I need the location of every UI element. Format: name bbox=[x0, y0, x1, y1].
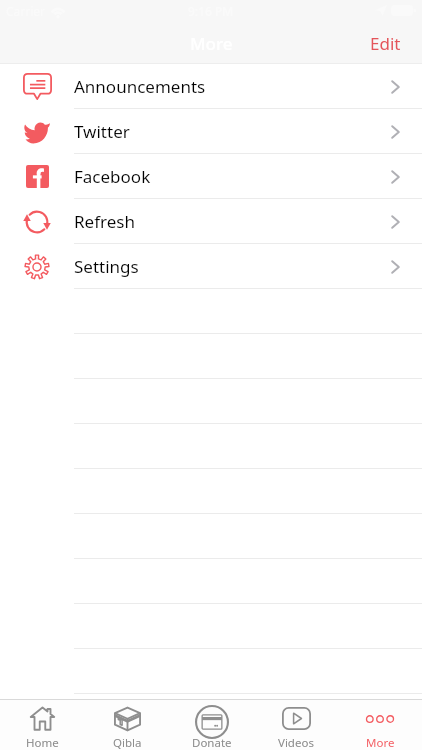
staticText: Home bbox=[26, 735, 59, 750]
button[interactable]: Twitter bbox=[0, 109, 422, 154]
button[interactable]: Edit bbox=[356, 24, 422, 63]
staticText: Announcements bbox=[74, 75, 206, 98]
button[interactable]: Donate bbox=[170, 700, 254, 750]
button[interactable]: More bbox=[338, 700, 422, 750]
staticText: More bbox=[190, 32, 233, 55]
staticText: Refresh bbox=[74, 210, 135, 233]
button[interactable]: Home bbox=[0, 700, 85, 750]
button[interactable]: Settings bbox=[0, 244, 422, 289]
button[interactable]: Facebook bbox=[0, 154, 422, 199]
button[interactable]: Qibla bbox=[85, 700, 170, 750]
staticText: Edit bbox=[370, 32, 401, 55]
staticText: Donate bbox=[192, 735, 232, 750]
button[interactable]: Videos bbox=[254, 700, 338, 750]
button[interactable]: Announcements bbox=[0, 64, 422, 109]
staticText: Videos bbox=[278, 735, 314, 750]
staticText: Qibla bbox=[113, 735, 142, 750]
staticText: Twitter bbox=[74, 120, 130, 143]
staticText: Facebook bbox=[74, 165, 151, 188]
button[interactable]: Refresh bbox=[0, 199, 422, 244]
staticText: More bbox=[366, 735, 395, 750]
staticText: Settings bbox=[74, 255, 139, 278]
